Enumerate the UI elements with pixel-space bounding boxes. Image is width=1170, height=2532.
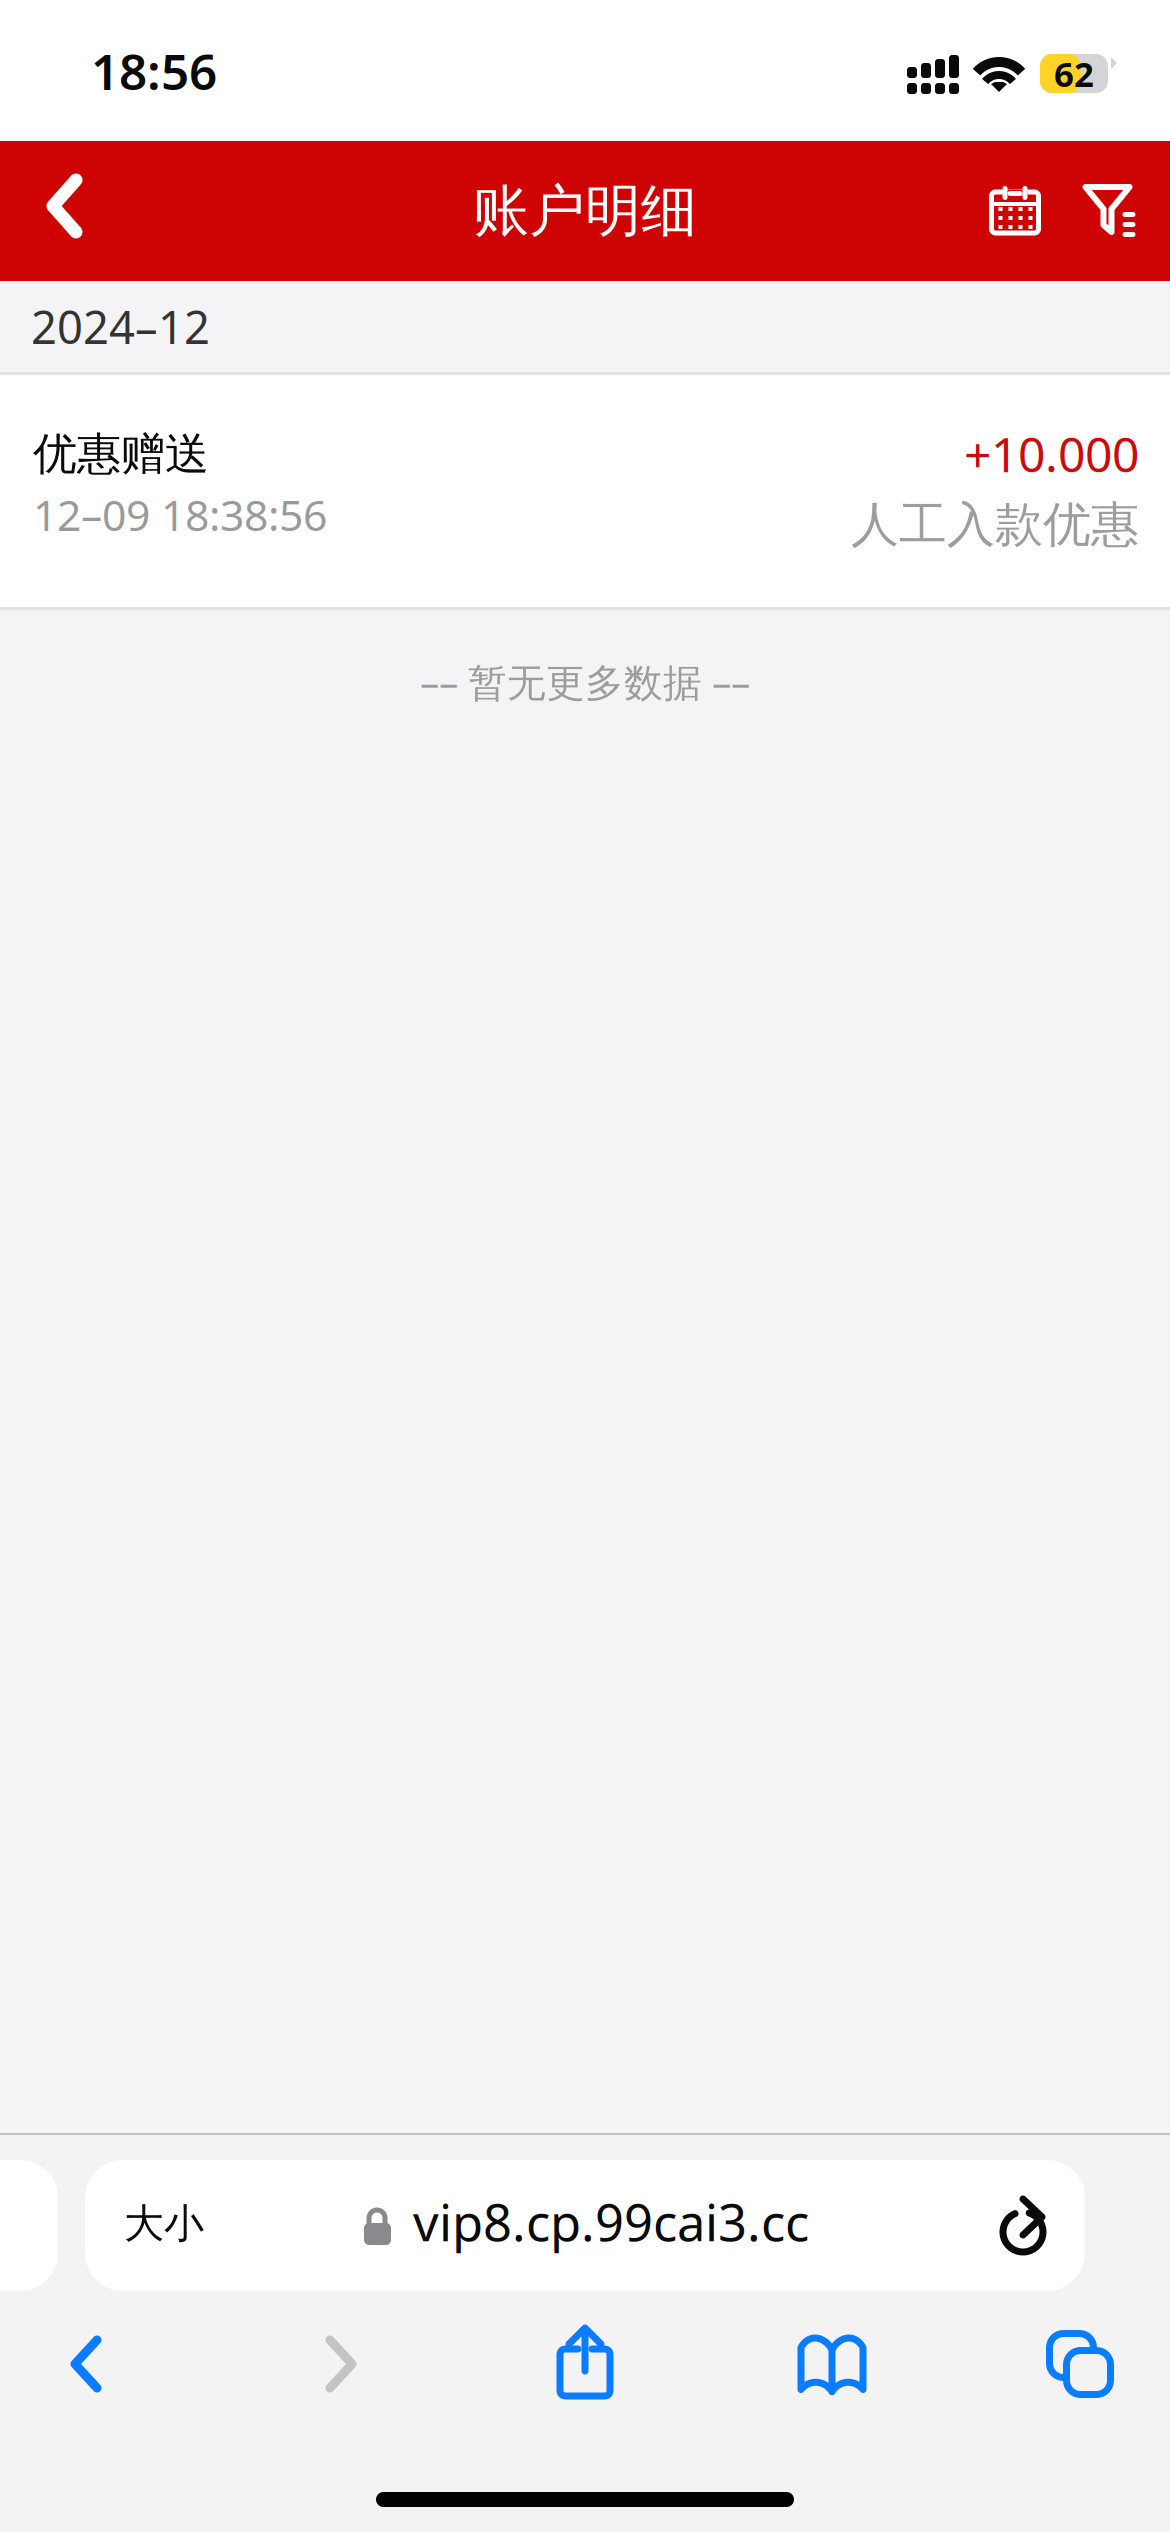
staticText: 62 <box>1054 50 1094 96</box>
staticText: vip8.cp.99cai3.cc <box>413 2188 809 2255</box>
button[interactable]: 后退 <box>11 2310 161 2418</box>
staticText: 12–09 18:38:56 <box>33 486 327 543</box>
button[interactable]: 选择日期 <box>965 139 1065 279</box>
staticText: 18:56 <box>91 38 217 103</box>
button[interactable]: 书签 <box>757 2312 907 2420</box>
staticText: 大小 <box>124 2199 204 2248</box>
staticText: –– 暂无更多数据 –– <box>420 656 750 707</box>
staticText: +10.000 <box>964 422 1139 485</box>
button[interactable]: 大小 <box>85 2160 1085 2291</box>
button[interactable]: 分享 <box>510 2308 660 2416</box>
staticText: 人工入款优惠 <box>851 495 1139 554</box>
button[interactable]: 标签页 <box>1005 2310 1155 2418</box>
staticText: 优惠赠送 <box>33 427 209 481</box>
button[interactable]: 筛选 <box>1059 138 1159 278</box>
staticText: 账户明细 <box>473 177 697 245</box>
button[interactable]: 返回 <box>0 136 130 276</box>
button[interactable]: 前进 <box>266 2310 416 2418</box>
button[interactable]: 优惠赠送 <box>0 375 1170 607</box>
staticText: 2024–12 <box>31 296 210 357</box>
